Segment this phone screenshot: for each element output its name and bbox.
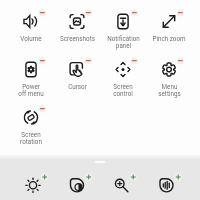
button[interactable]: Screen control xyxy=(100,59,146,107)
button[interactable]: Brightness xyxy=(11,159,55,200)
staticText: Screen control xyxy=(113,83,133,98)
staticText: Notification panel xyxy=(107,35,140,50)
button[interactable]: Sound volume xyxy=(144,159,189,200)
staticText: Pinch zoom xyxy=(152,35,186,42)
button[interactable]: Pinch zoom xyxy=(146,11,192,59)
staticText: Power off menu xyxy=(18,83,44,98)
button[interactable]: Screen rotation xyxy=(8,107,54,155)
button[interactable]: Volume xyxy=(8,11,54,59)
button[interactable]: Zoom in xyxy=(99,159,144,200)
staticText: Screen rotation xyxy=(20,131,42,146)
staticText: Screenshots xyxy=(60,35,95,42)
button[interactable]: Cursor xyxy=(54,59,100,107)
button[interactable]: Notification panel xyxy=(100,11,146,59)
button[interactable]: Contrast xyxy=(55,159,99,200)
button[interactable]: Screenshots xyxy=(54,11,100,59)
staticText: Menu settings xyxy=(158,83,181,98)
staticText: Volume xyxy=(20,35,42,42)
button[interactable]: Menu settings xyxy=(146,59,192,107)
staticText: Cursor xyxy=(68,83,87,90)
button[interactable]: Power off menu xyxy=(8,59,54,107)
